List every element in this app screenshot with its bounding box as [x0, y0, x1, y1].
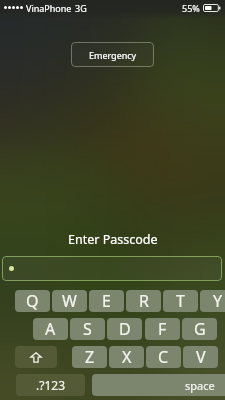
staticText: R: [139, 290, 149, 312]
button[interactable]: space: [92, 374, 225, 396]
staticText: Z: [85, 346, 95, 368]
staticText: VinaPhone: [26, 2, 72, 14]
staticText: A: [45, 318, 56, 340]
staticText: E: [102, 290, 111, 312]
button[interactable]: Emergency: [71, 42, 154, 67]
staticText: S: [83, 318, 92, 340]
staticText: W: [62, 290, 77, 312]
button[interactable]: [2, 256, 222, 281]
button[interactable]: Shift: [15, 346, 57, 368]
button[interactable]: S: [70, 318, 105, 340]
staticText: space: [185, 378, 215, 393]
button[interactable]: F: [145, 318, 180, 340]
button[interactable]: Z: [72, 346, 107, 368]
button[interactable]: V: [183, 346, 218, 368]
button[interactable]: D: [107, 318, 142, 340]
button[interactable]: E: [89, 290, 124, 312]
staticText: Enter Passcode: [68, 231, 158, 248]
staticText: 3G: [75, 2, 87, 14]
staticText: F: [158, 318, 167, 340]
button[interactable]: X: [109, 346, 144, 368]
staticText: C: [158, 346, 169, 368]
staticText: D: [119, 318, 131, 340]
button[interactable]: W: [52, 290, 87, 312]
staticText: G: [194, 318, 206, 340]
button[interactable]: T: [163, 290, 198, 312]
button[interactable]: A: [33, 318, 68, 340]
button[interactable]: C: [146, 346, 181, 368]
staticText: 55%: [182, 2, 200, 14]
staticText: X: [122, 346, 132, 368]
staticText: V: [196, 346, 206, 368]
button[interactable]: Y: [200, 290, 225, 312]
staticText: Q: [26, 290, 39, 312]
staticText: .?123: [36, 377, 66, 393]
staticText: Emergency: [89, 49, 137, 61]
button[interactable]: G: [182, 318, 217, 340]
button[interactable]: Q: [15, 290, 50, 312]
staticText: Y: [213, 290, 223, 312]
button[interactable]: .?123: [16, 374, 85, 396]
button[interactable]: R: [126, 290, 161, 312]
staticText: T: [176, 290, 185, 312]
